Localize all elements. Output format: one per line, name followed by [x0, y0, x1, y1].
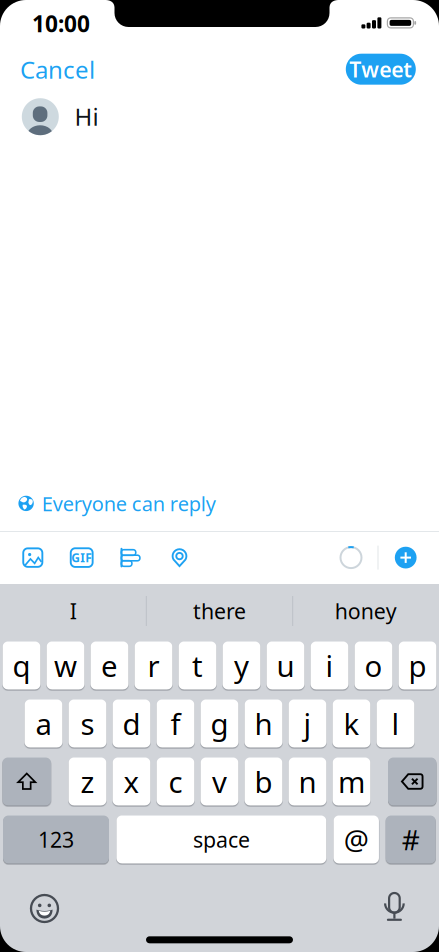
- button[interactable]: Emoji: [30, 894, 59, 923]
- staticText: m: [338, 762, 365, 801]
- staticText: Tweet: [349, 55, 412, 83]
- button[interactable]: Tag location: [165, 542, 194, 573]
- button[interactable]: there: [149, 591, 289, 631]
- button[interactable]: Add poll: [114, 542, 147, 573]
- button[interactable]: Cancel: [20, 55, 160, 83]
- staticText: u: [276, 646, 294, 685]
- staticText: honey: [335, 597, 397, 625]
- staticText: w: [54, 646, 77, 685]
- button[interactable]: f: [156, 699, 194, 747]
- button[interactable]: Dictate: [384, 894, 405, 923]
- button[interactable]: Delete: [388, 757, 436, 805]
- button[interactable]: @: [333, 815, 379, 863]
- staticText: GIF: [71, 550, 92, 565]
- staticText: there: [193, 597, 246, 625]
- staticText: j: [303, 704, 311, 743]
- staticText: o: [364, 646, 382, 685]
- button[interactable]: n: [288, 757, 326, 805]
- staticText: I: [70, 597, 77, 625]
- staticText: f: [170, 704, 180, 743]
- staticText: 10:00: [32, 8, 90, 38]
- staticText: #: [402, 821, 420, 858]
- staticText: g: [210, 704, 228, 743]
- staticText: x: [123, 762, 139, 801]
- button[interactable]: Add GIF: [65, 542, 99, 573]
- button[interactable]: Add photo: [17, 542, 48, 573]
- button[interactable]: Tweet: [346, 54, 416, 85]
- staticText: n: [298, 762, 316, 801]
- staticText: s: [80, 704, 94, 743]
- staticText: Cancel: [20, 54, 95, 85]
- button[interactable]: s: [68, 699, 106, 747]
- staticText: Hi: [74, 101, 98, 132]
- button[interactable]: q: [2, 641, 40, 689]
- staticText: k: [343, 704, 359, 743]
- button[interactable]: a: [24, 699, 62, 747]
- staticText: y: [234, 646, 249, 685]
- button[interactable]: b: [244, 757, 282, 805]
- staticText: i: [325, 646, 333, 685]
- staticText: q: [12, 646, 30, 685]
- button[interactable]: k: [332, 699, 370, 747]
- button[interactable]: z: [68, 757, 106, 805]
- staticText: @: [344, 821, 369, 858]
- button[interactable]: I: [3, 591, 143, 631]
- staticText: r: [147, 646, 159, 685]
- button[interactable]: d: [112, 699, 150, 747]
- button[interactable]: t: [178, 641, 216, 689]
- button[interactable]: u: [266, 641, 304, 689]
- button[interactable]: Everyone can reply: [18, 489, 278, 517]
- button[interactable]: #: [386, 815, 436, 863]
- staticText: e: [101, 646, 118, 685]
- button[interactable]: x: [112, 757, 150, 805]
- staticText: v: [212, 762, 227, 801]
- button[interactable]: c: [156, 757, 194, 805]
- staticText: a: [35, 704, 51, 743]
- button[interactable]: i: [310, 641, 348, 689]
- staticText: space: [193, 825, 250, 854]
- button[interactable]: g: [200, 699, 238, 747]
- staticText: c: [168, 762, 182, 801]
- button[interactable]: j: [288, 699, 326, 747]
- staticText: l: [391, 704, 399, 743]
- button[interactable]: Shift: [2, 757, 51, 805]
- button[interactable]: w: [46, 641, 84, 689]
- staticText: d: [122, 704, 140, 743]
- button[interactable]: o: [354, 641, 392, 689]
- button[interactable]: h: [244, 699, 282, 747]
- staticText: b: [254, 762, 272, 801]
- staticText: h: [254, 704, 272, 743]
- button[interactable]: 123: [3, 815, 109, 863]
- button[interactable]: honey: [296, 591, 436, 631]
- staticText: Everyone can reply: [42, 490, 216, 517]
- button[interactable]: r: [134, 641, 172, 689]
- staticText: 123: [38, 825, 74, 854]
- button[interactable]: y: [222, 641, 260, 689]
- button[interactable]: e: [90, 641, 128, 689]
- button[interactable]: space: [116, 815, 326, 863]
- button[interactable]: p: [398, 641, 436, 689]
- staticText: z: [80, 762, 94, 801]
- button[interactable]: v: [200, 757, 238, 805]
- button[interactable]: l: [376, 699, 414, 747]
- button[interactable]: Add another Tweet: [395, 547, 417, 568]
- staticText: t: [192, 646, 203, 685]
- staticText: p: [408, 646, 426, 685]
- button[interactable]: m: [332, 757, 370, 805]
